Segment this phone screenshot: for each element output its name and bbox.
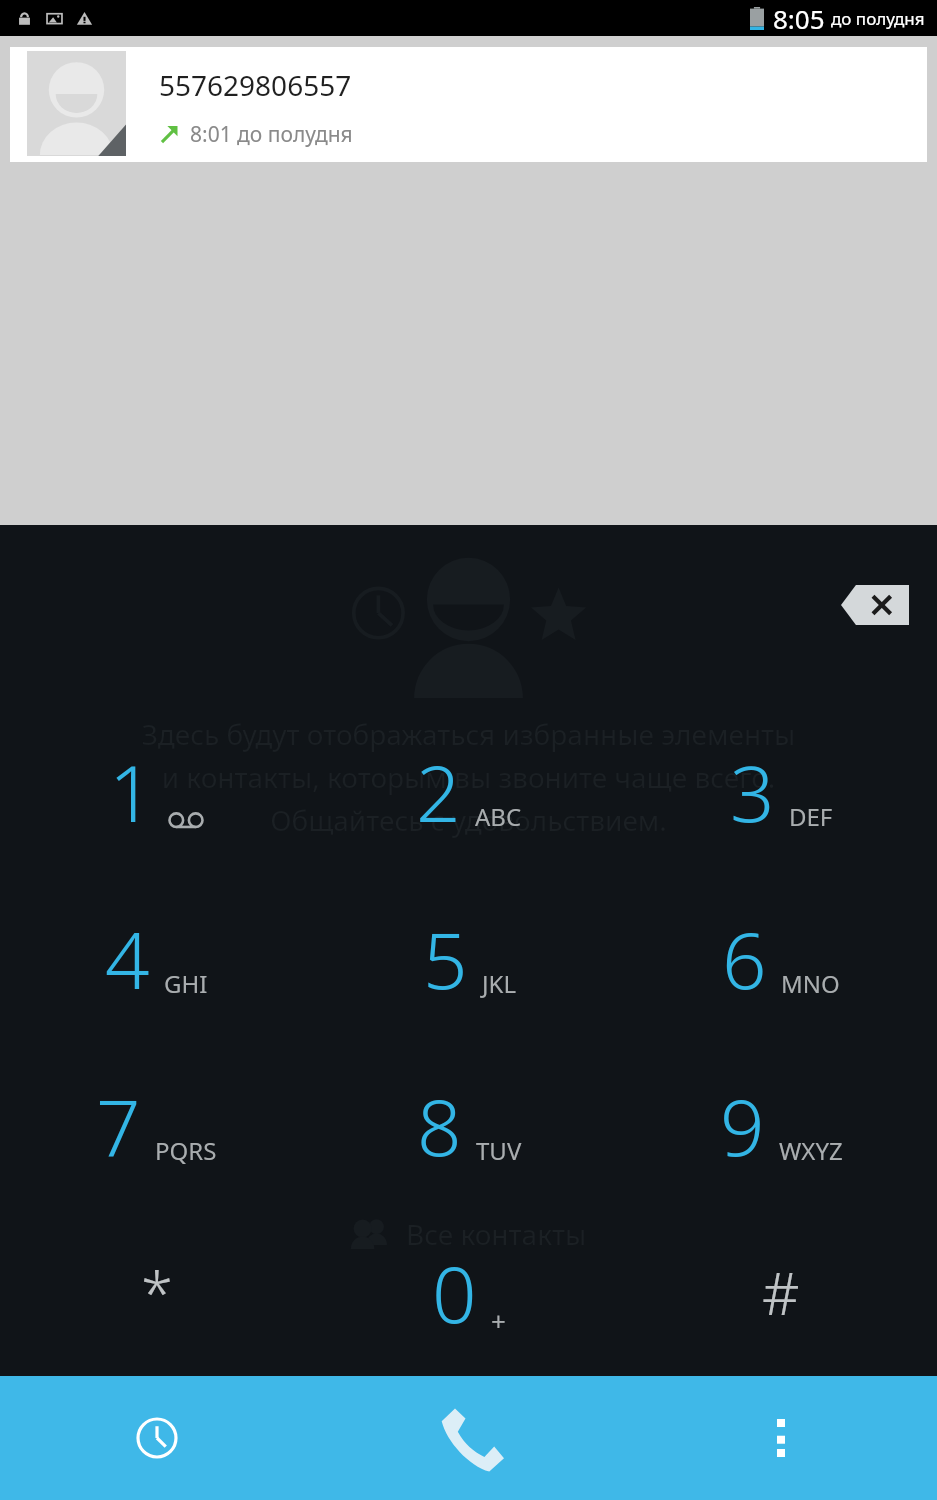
button[interactable]: 1 [0, 708, 313, 875]
staticText: GHI [164, 967, 208, 1000]
staticText: ABC [475, 800, 522, 833]
button[interactable]: # [625, 1209, 937, 1376]
staticText: DEF [789, 800, 833, 833]
button[interactable]: 2 [313, 708, 625, 875]
staticText: до полудня [831, 7, 925, 30]
button[interactable]: 7 [0, 1042, 313, 1209]
staticText: 8:01 до полудня [190, 120, 353, 149]
button[interactable]: 9 [625, 1042, 937, 1209]
staticText: 1 [109, 739, 154, 845]
staticText: 6 [722, 906, 767, 1012]
button[interactable]: 557629806557 [10, 47, 927, 162]
button[interactable]: Recents [0, 1376, 313, 1500]
staticText: WXYZ [779, 1134, 843, 1167]
staticText: 3 [730, 739, 775, 845]
button[interactable]: 0 [313, 1209, 625, 1376]
button[interactable]: 5 [313, 875, 625, 1042]
staticText: + [491, 1303, 506, 1338]
staticText: 5 [423, 906, 468, 1012]
button[interactable]: Dialpad [313, 1376, 625, 1500]
staticText: 2 [416, 739, 461, 845]
staticText: Все контакты [406, 1215, 587, 1253]
staticText: 8:05 [773, 1, 825, 36]
staticText: 4 [105, 906, 150, 1012]
staticText: 557629806557 [159, 66, 352, 104]
staticText: 8 [417, 1073, 462, 1179]
staticText: * [141, 1253, 173, 1332]
staticText: MNO [781, 967, 840, 1000]
button[interactable]: Backspace [841, 585, 909, 625]
staticText: 9 [720, 1073, 765, 1179]
staticText: PQRS [155, 1134, 217, 1167]
staticText: 7 [96, 1073, 141, 1179]
button[interactable]: 6 [625, 875, 937, 1042]
staticText: 0 [432, 1240, 477, 1346]
staticText: JKL [482, 967, 516, 1000]
button[interactable]: 3 [625, 708, 937, 875]
button[interactable]: More options [625, 1376, 937, 1500]
button[interactable]: 4 [0, 875, 313, 1042]
button[interactable]: 8 [313, 1042, 625, 1209]
staticText: Здесь будут отображаться избранные элеме… [0, 715, 937, 839]
staticText: # [762, 1253, 800, 1332]
staticText: TUV [476, 1134, 522, 1167]
button[interactable]: * [0, 1209, 313, 1376]
